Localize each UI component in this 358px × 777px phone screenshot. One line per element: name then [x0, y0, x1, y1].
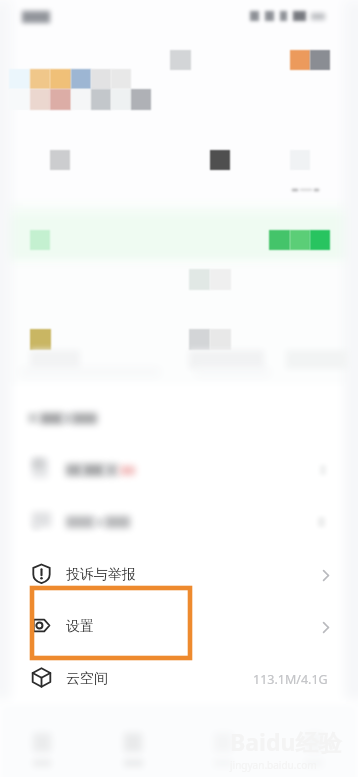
button[interactable]: Home — [0, 710, 89, 777]
staticText: 设置 — [66, 618, 94, 636]
button[interactable]: 投诉与举报 — [0, 549, 358, 601]
button[interactable]: Discover — [89, 710, 178, 777]
staticText: jingyan.baidu.com — [230, 758, 317, 772]
staticText: 113.1M/4.1G — [253, 671, 328, 688]
button[interactable]: 设置 — [0, 601, 358, 653]
staticText: 云空间 — [66, 670, 108, 688]
staticText: Baidu经验 — [230, 726, 342, 757]
staticText: 投诉与举报 — [66, 566, 136, 584]
button[interactable]: Profile — [268, 710, 358, 777]
button[interactable]: 云空间 — [0, 653, 358, 705]
